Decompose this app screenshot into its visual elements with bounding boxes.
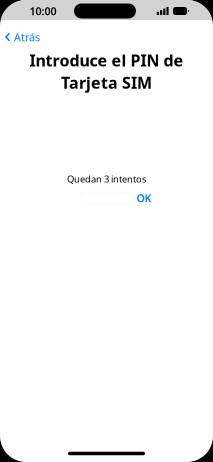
staticText: Quedan 3 intentos <box>67 173 146 185</box>
button[interactable]: OK <box>133 188 154 208</box>
button[interactable]: Atrás <box>0 24 45 50</box>
staticText: Tarjeta SIM <box>61 72 152 93</box>
staticText: Atrás <box>14 30 40 44</box>
staticText: 10:00 <box>29 4 56 18</box>
staticText: OK <box>136 191 151 205</box>
staticText: Introduce el PIN de <box>29 50 183 71</box>
